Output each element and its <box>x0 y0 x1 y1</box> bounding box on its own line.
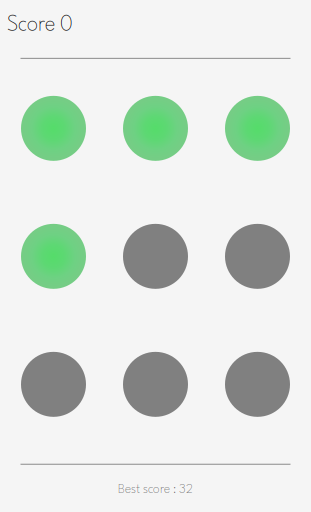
staticText: Best score : 32 <box>118 484 193 496</box>
button[interactable]: Lit tile <box>21 96 86 161</box>
button[interactable]: Lit tile <box>21 224 86 289</box>
button[interactable]: Unlit tile <box>21 352 86 417</box>
button[interactable]: Lit tile <box>225 96 290 161</box>
button[interactable]: Unlit tile <box>123 224 188 289</box>
button[interactable]: Unlit tile <box>225 224 290 289</box>
button[interactable]: Unlit tile <box>123 352 188 417</box>
button[interactable]: Unlit tile <box>225 352 290 417</box>
staticText: Score 0 <box>7 15 73 36</box>
button[interactable]: Lit tile <box>123 96 188 161</box>
